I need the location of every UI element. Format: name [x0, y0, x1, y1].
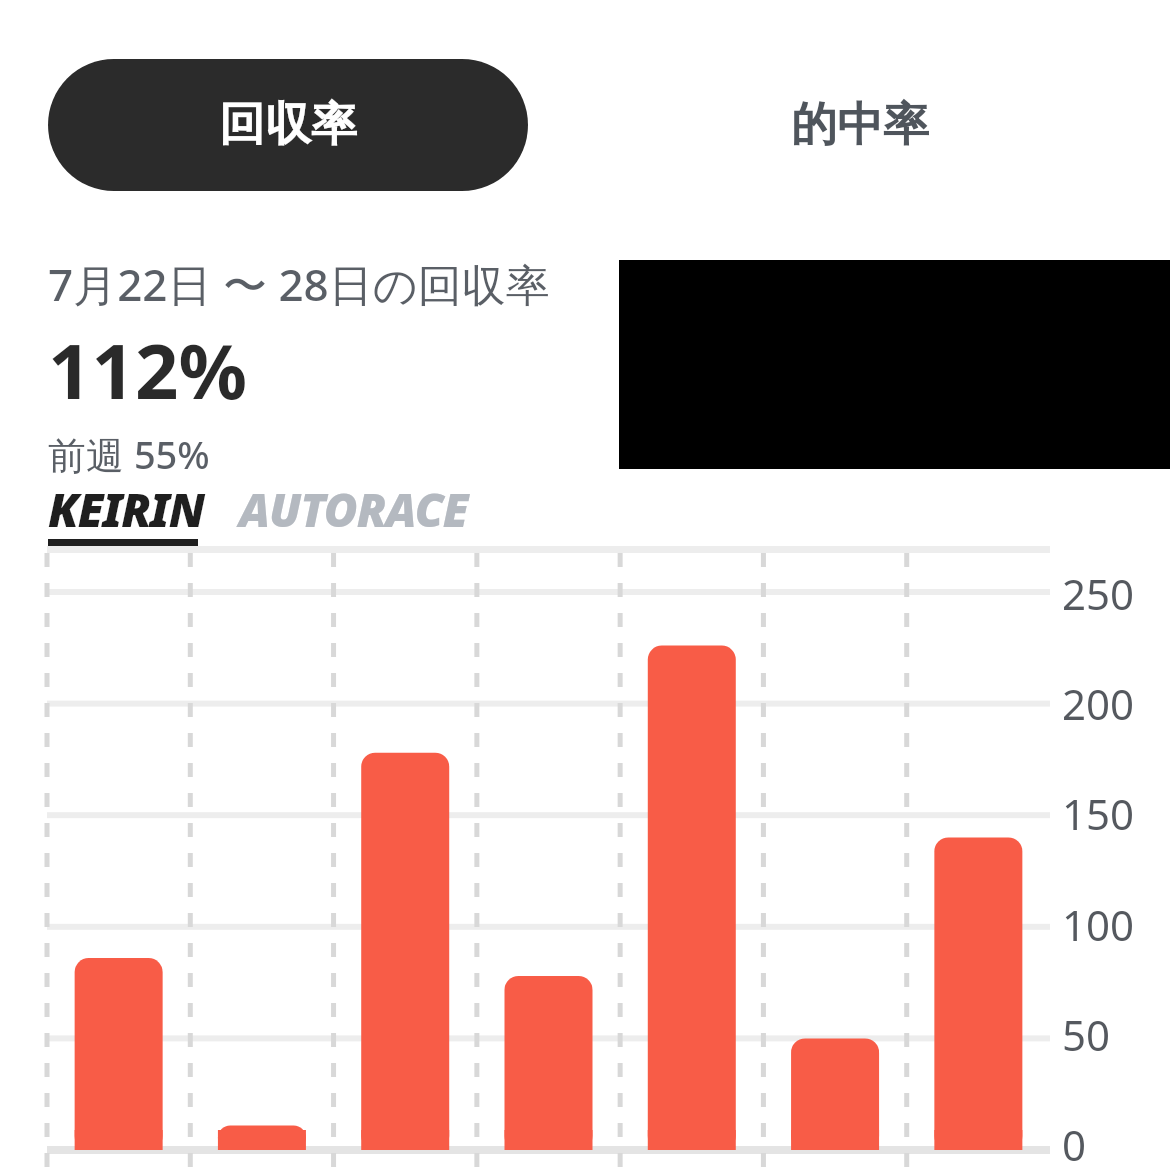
- button[interactable]: KEIRIN: [48, 478, 205, 541]
- staticText: 0: [1062, 1116, 1087, 1170]
- staticText: 250: [1062, 565, 1135, 622]
- staticText: 150: [1062, 785, 1135, 842]
- button[interactable]: 回収率: [48, 59, 528, 191]
- staticText: 50: [1062, 1006, 1111, 1063]
- staticText: 前週 55%: [48, 428, 210, 480]
- staticText: 7月22日 〜 28日の回収率: [48, 254, 550, 314]
- staticText: 回収率: [219, 96, 357, 154]
- staticText: KEIRIN: [48, 478, 205, 541]
- button[interactable]: AUTORACE: [239, 478, 468, 541]
- staticText: 的中率: [791, 96, 929, 154]
- staticText: AUTORACE: [239, 478, 468, 541]
- staticText: 100: [1062, 896, 1135, 953]
- staticText: 112%: [48, 318, 247, 422]
- staticText: 200: [1062, 675, 1135, 732]
- button[interactable]: 的中率: [620, 59, 1100, 191]
